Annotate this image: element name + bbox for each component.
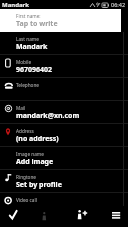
button[interactable]: Last name [0, 32, 128, 55]
staticText: Ringtone [16, 174, 36, 180]
staticText: Tap to write [16, 19, 58, 29]
staticText: Add image [16, 157, 54, 167]
staticText: 06:42 [111, 1, 126, 8]
button[interactable]: Telephone [0, 78, 128, 101]
staticText: Mail [16, 105, 26, 111]
staticText: Mobile [16, 59, 32, 65]
button[interactable]: Address [0, 124, 128, 147]
staticText: (no address) [16, 134, 59, 144]
button[interactable]: Menu [102, 206, 128, 227]
button[interactable]: First name: [0, 9, 128, 32]
staticText: 967096402 [16, 65, 53, 75]
button[interactable]: Video call [0, 193, 128, 206]
staticText: Set by profile [16, 180, 62, 190]
button[interactable]: Ringtone [0, 170, 128, 193]
staticText: Last name [16, 36, 39, 42]
staticText: Mandark [2, 1, 29, 9]
button[interactable]: Done [4, 206, 32, 227]
staticText: Telephone [16, 82, 39, 88]
staticText: First name: [16, 13, 41, 19]
button[interactable]: Mobile [0, 55, 128, 78]
staticText: mandark@xn.com [16, 111, 80, 121]
staticText: Address [16, 128, 34, 134]
staticText: Mandark [16, 42, 48, 52]
button[interactable]: Contact details [34, 206, 62, 227]
staticText: Video call [16, 197, 37, 203]
button[interactable]: Image name [0, 147, 128, 170]
button[interactable]: Add contact [68, 206, 96, 227]
staticText: Image name [16, 151, 44, 157]
button[interactable]: Mail [0, 101, 128, 124]
